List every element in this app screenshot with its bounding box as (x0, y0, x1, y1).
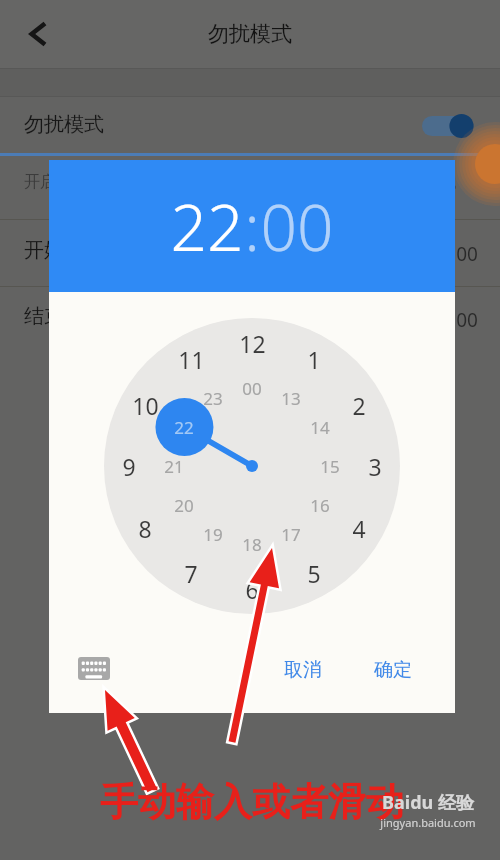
staticText: 00 (260, 183, 334, 270)
button[interactable]: Do not disturb toggle (420, 108, 480, 144)
staticText: 8 (138, 513, 152, 544)
staticText: 11 (178, 344, 205, 375)
staticText: 19 (203, 523, 223, 546)
staticText: 00 (456, 307, 478, 333)
staticText: 22 (174, 416, 194, 439)
staticText: 21 (164, 455, 184, 478)
button[interactable]: 开始 (24, 238, 144, 278)
staticText: 14 (310, 416, 330, 439)
staticText: 勿扰模式 (24, 112, 104, 137)
staticText: 手动输入或者滑动 (100, 778, 404, 826)
staticText: 17 (281, 523, 301, 546)
staticText: 16 (310, 494, 330, 517)
button[interactable]: 取消 (273, 652, 333, 688)
staticText: 10 (132, 390, 159, 421)
button[interactable]: 22 (49, 160, 455, 292)
staticText: 取消 (284, 658, 322, 682)
staticText: 勿扰模式 (208, 21, 292, 47)
staticText: 2 (352, 390, 366, 421)
button[interactable]: 结束 (24, 304, 144, 344)
button[interactable]: 确定 (363, 652, 423, 688)
staticText: jingyan.baidu.com (380, 815, 476, 830)
staticText: : (244, 183, 260, 270)
button[interactable]: Switch to keyboard input (74, 651, 114, 685)
staticText: 00 (456, 241, 478, 267)
staticText: 13 (281, 387, 301, 410)
staticText: 7 (184, 558, 198, 589)
button[interactable]: Clock face hour selector (49, 292, 455, 643)
staticText: 15 (320, 455, 340, 478)
staticText: 20 (174, 494, 194, 517)
staticText: 3 (368, 451, 382, 482)
staticText: 12 (239, 328, 266, 359)
staticText: 23 (203, 387, 223, 410)
staticText: 确定 (374, 658, 412, 682)
staticText: 开始 (24, 238, 64, 263)
staticText: 开启 (24, 172, 56, 192)
staticText: 4 (352, 513, 366, 544)
staticText: Baidu 经验 (382, 790, 474, 815)
staticText: 22 (170, 183, 244, 270)
staticText: 00 (242, 377, 262, 400)
staticText: 1 (307, 344, 321, 375)
staticText: 6 (245, 574, 259, 605)
button[interactable]: Back (16, 11, 62, 57)
staticText: 9 (122, 451, 136, 482)
staticText: 18 (242, 533, 262, 556)
staticText: 5 (307, 558, 321, 589)
staticText: 。 (451, 172, 467, 192)
staticText: 结束 (24, 304, 64, 329)
